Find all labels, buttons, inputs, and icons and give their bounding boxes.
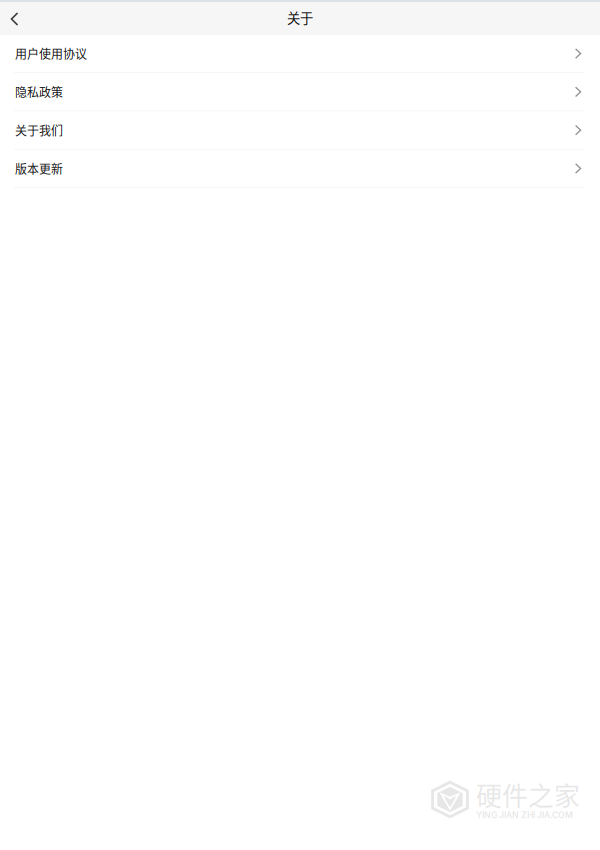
staticText: 用户使用协议 [15,45,87,62]
staticText: 关于我们 [15,121,63,139]
button[interactable]: 用户使用协议 [0,35,600,72]
staticText: 隐私政策 [15,83,63,101]
button[interactable]: 隐私政策 [0,73,600,110]
staticText: 关于 [287,8,313,27]
staticText: YING JIAN ZHI JIA.COM [476,810,573,820]
staticText: 版本更新 [15,160,63,177]
button[interactable]: Back [0,0,29,35]
button[interactable]: 版本更新 [0,150,600,187]
staticText: 硬件之家 [476,776,580,813]
button[interactable]: 关于我们 [0,111,600,149]
